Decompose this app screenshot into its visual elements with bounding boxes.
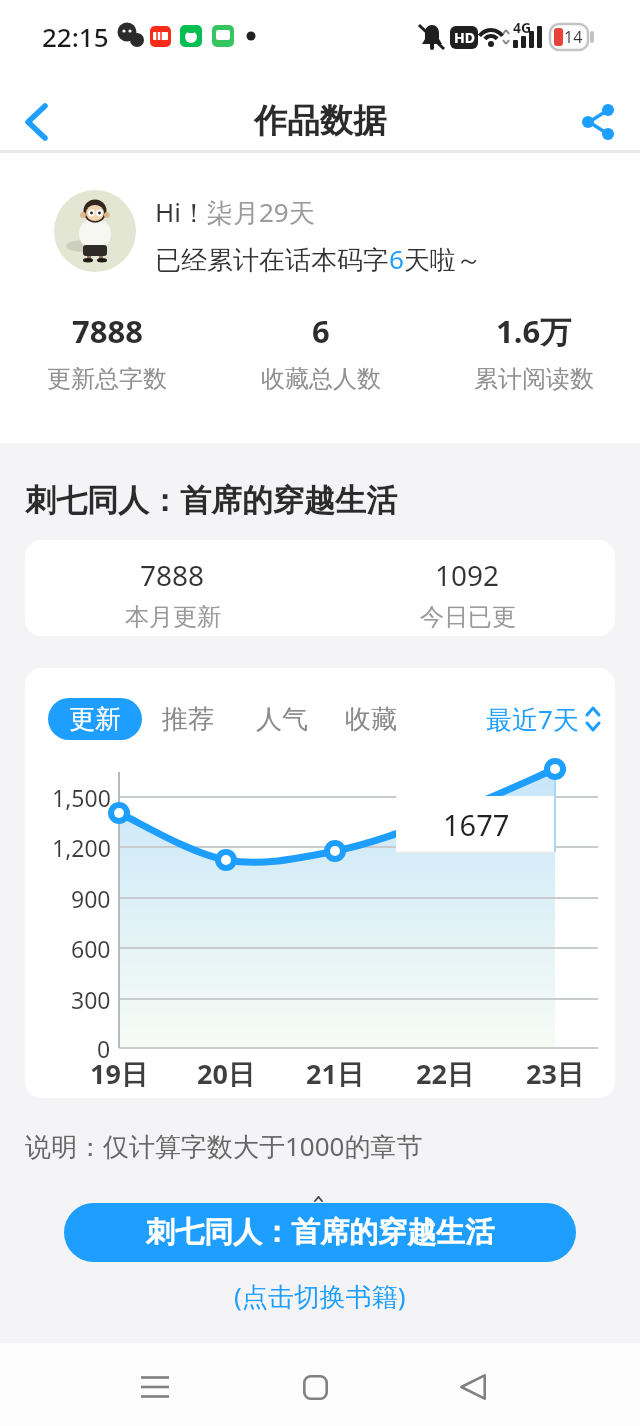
button[interactable] <box>443 1357 503 1417</box>
button[interactable] <box>125 1357 185 1417</box>
staticText: 4G <box>513 18 532 37</box>
staticText: 更新 <box>69 703 121 736</box>
staticText: 1,500 <box>52 782 111 812</box>
staticText: 1677 <box>443 805 510 844</box>
staticText: Hi！柒月29天 <box>155 194 315 230</box>
staticText: 说明：仅计算字数大于1000的章节 <box>25 1128 423 1164</box>
staticText: 已经累计在话本码字6天啦～ <box>155 241 482 277</box>
staticText: 0 <box>97 1033 111 1063</box>
staticText: 1,200 <box>52 832 111 862</box>
button[interactable] <box>8 94 64 150</box>
staticText: 20日 <box>197 1055 255 1087</box>
staticText: 19日 <box>90 1055 148 1087</box>
staticText: 900 <box>71 883 111 913</box>
staticText: 刺七同人：首席的穿越生活 <box>25 481 397 520</box>
button[interactable]: 刺七同人：首席的穿越生活 <box>64 1203 576 1262</box>
staticText: 累计阅读数 <box>474 364 594 394</box>
button[interactable]: 最近7天 <box>486 698 601 740</box>
staticText: 7888 <box>140 556 205 594</box>
staticText: 最近7天 <box>486 701 579 737</box>
staticText: 推荐 <box>162 703 214 736</box>
button[interactable]: 人气 <box>237 698 327 740</box>
staticText: 今日已更 <box>420 602 516 632</box>
staticText: HD <box>454 28 475 47</box>
button[interactable]: 推荐 <box>143 698 233 740</box>
staticText: 22:15 <box>42 19 109 54</box>
staticText: 刺七同人：首席的穿越生活 <box>146 1214 494 1251</box>
button[interactable]: 更新 <box>48 698 142 740</box>
staticText: 作品数据 <box>254 100 386 142</box>
staticText: 22日 <box>416 1055 474 1087</box>
button[interactable]: (点击切换书籍) <box>0 1276 640 1316</box>
button[interactable] <box>285 1357 345 1417</box>
staticText: 6 <box>312 310 330 352</box>
staticText: 21日 <box>306 1055 364 1087</box>
staticText: 收藏总人数 <box>261 364 381 394</box>
staticText: 7888 <box>72 310 143 352</box>
staticText: 600 <box>71 933 111 963</box>
staticText: 本月更新 <box>125 602 221 632</box>
staticText: 300 <box>71 984 111 1014</box>
staticText: 人气 <box>256 703 308 736</box>
staticText: 更新总字数 <box>47 364 167 394</box>
staticText: (点击切换书籍) <box>234 1278 406 1314</box>
button[interactable] <box>568 94 628 150</box>
staticText: 1092 <box>435 556 500 594</box>
staticText: 23日 <box>526 1055 584 1087</box>
staticText: 14 <box>564 26 583 48</box>
staticText: 收藏 <box>345 703 397 736</box>
button[interactable]: 收藏 <box>326 698 416 740</box>
staticText: 1.6万 <box>496 310 572 352</box>
